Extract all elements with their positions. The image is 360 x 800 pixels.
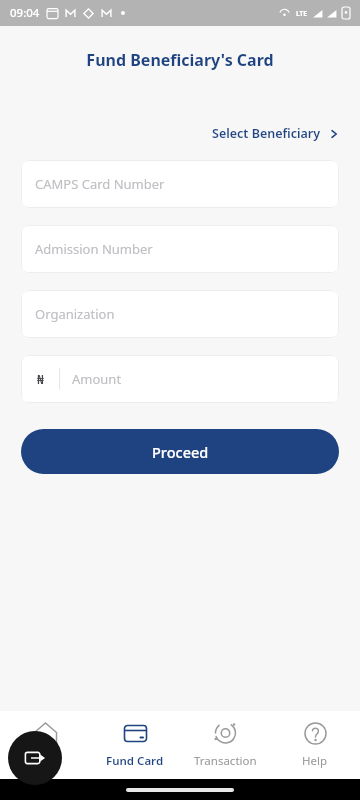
button[interactable]: CAMPS Card Number xyxy=(21,160,339,208)
staticText: Proceed xyxy=(152,442,209,462)
staticText: Admission Number xyxy=(35,240,153,258)
staticText: CAMPS Card Number xyxy=(35,175,165,193)
button[interactable]: Home xyxy=(0,711,90,779)
button[interactable]: Proceed xyxy=(21,429,339,474)
button[interactable]: Screen recorder xyxy=(8,731,62,785)
staticText: ₦ xyxy=(37,371,44,387)
staticText: LTE xyxy=(296,9,307,18)
button[interactable]: Fund Card xyxy=(90,711,180,779)
staticText: Fund Card xyxy=(106,753,164,769)
button[interactable]: Help xyxy=(270,711,360,779)
staticText: Help xyxy=(302,753,328,769)
staticText: Select Beneficiary xyxy=(212,125,321,142)
button[interactable]: Select Beneficiary xyxy=(210,120,341,147)
button[interactable]: Transaction xyxy=(180,711,270,779)
staticText: Organization xyxy=(35,305,115,323)
button[interactable]: ₦ xyxy=(21,355,339,403)
staticText: Fund Beneficiary's Card xyxy=(0,49,360,71)
button[interactable]: Organization xyxy=(21,290,339,338)
button[interactable]: Admission Number xyxy=(21,225,339,273)
staticText: 09:04 xyxy=(10,5,40,21)
staticText: Transaction xyxy=(194,753,257,769)
staticText: Amount xyxy=(72,370,122,388)
staticText: Home xyxy=(29,753,62,769)
